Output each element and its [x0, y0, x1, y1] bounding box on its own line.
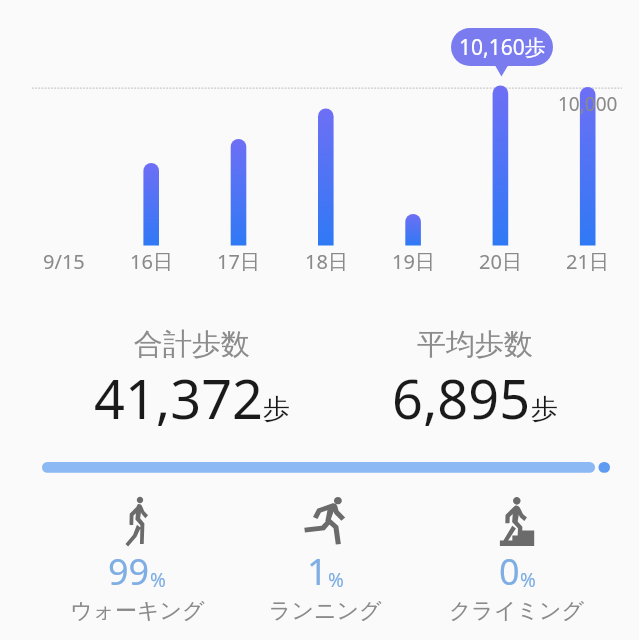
- staticText: 0: [499, 547, 520, 596]
- staticText: 6,895: [392, 361, 531, 435]
- staticText: 歩: [531, 392, 558, 426]
- staticText: 99: [108, 547, 150, 596]
- staticText: 9/15: [43, 248, 85, 275]
- staticText: ウォーキング: [70, 597, 205, 625]
- staticText: 10,160歩: [459, 33, 546, 62]
- staticText: ランニング: [269, 597, 382, 625]
- staticText: 合計歩数: [134, 326, 250, 363]
- staticText: 41,372: [94, 361, 263, 435]
- button[interactable]: クライミング: [422, 492, 612, 625]
- staticText: %: [520, 567, 536, 593]
- staticText: 21日: [566, 248, 609, 275]
- staticText: 16日: [130, 248, 173, 275]
- staticText: 20日: [479, 248, 522, 275]
- staticText: 17日: [217, 248, 260, 275]
- staticText: クライミング: [449, 597, 585, 625]
- staticText: 18日: [305, 248, 348, 275]
- button[interactable]: ウォーキング: [42, 492, 232, 625]
- button[interactable]: 10,160歩: [451, 28, 553, 66]
- staticText: %: [328, 567, 344, 593]
- staticText: 1: [307, 547, 328, 596]
- staticText: 歩: [263, 392, 290, 426]
- staticText: 10,000: [558, 91, 618, 117]
- staticText: 平均歩数: [417, 326, 533, 363]
- staticText: 19日: [392, 248, 435, 275]
- button[interactable]: ランニング: [230, 492, 420, 625]
- staticText: %: [150, 567, 166, 593]
